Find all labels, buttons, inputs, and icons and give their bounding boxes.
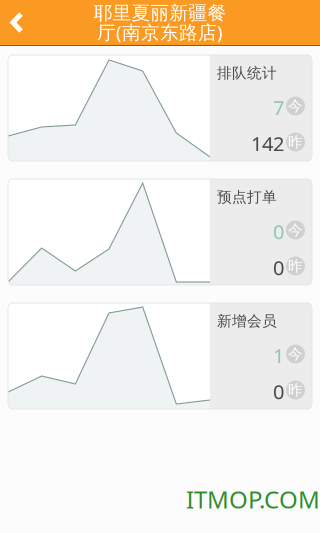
staticText: 今 xyxy=(288,97,303,115)
staticText: 0 xyxy=(273,218,284,245)
staticText: 昨 xyxy=(288,133,303,151)
staticText: 7 xyxy=(273,94,284,121)
staticText: 耶里夏丽新疆餐 xyxy=(93,1,226,24)
staticText: 0 xyxy=(273,254,284,281)
staticText: 1 xyxy=(273,342,284,369)
staticText: 昨 xyxy=(288,381,303,399)
staticText: 今 xyxy=(288,345,303,363)
staticText: 预点打单 xyxy=(217,188,277,206)
staticText: ITMOP.COM xyxy=(186,483,320,515)
staticText: 今 xyxy=(288,221,303,239)
staticText: 厅(南京东路店) xyxy=(97,20,223,44)
staticText: 昨 xyxy=(288,257,303,275)
staticText: 排队统计 xyxy=(217,64,277,82)
button[interactable]: Back xyxy=(0,0,37,45)
staticText: 新增会员 xyxy=(217,312,277,330)
staticText: 142 xyxy=(251,130,284,157)
staticText: 0 xyxy=(273,378,284,405)
